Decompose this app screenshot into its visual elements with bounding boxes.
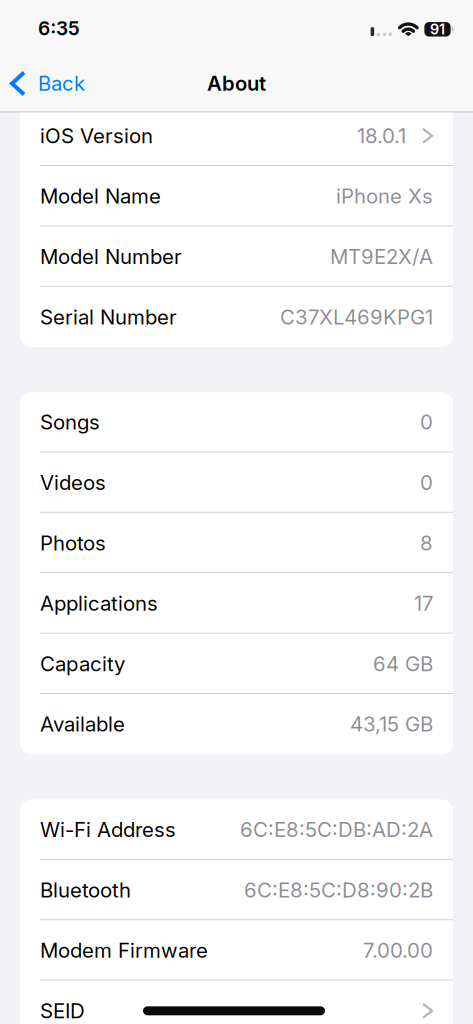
staticText: SEID bbox=[40, 998, 85, 1023]
staticText: 7.00.00 bbox=[363, 938, 433, 963]
staticText: About bbox=[207, 71, 266, 96]
staticText: Back bbox=[38, 71, 85, 96]
staticText: iPhone Xs bbox=[336, 184, 433, 209]
staticText: 17 bbox=[414, 591, 433, 616]
staticText: Applications bbox=[40, 591, 158, 616]
staticText: iOS Version bbox=[40, 123, 153, 148]
staticText: 91 bbox=[430, 21, 445, 38]
staticText: Photos bbox=[40, 531, 106, 555]
staticText: Serial Number bbox=[40, 305, 177, 329]
staticText: 8 bbox=[420, 531, 433, 555]
staticText: Model Number bbox=[40, 244, 182, 269]
staticText: MT9E2X/A bbox=[330, 244, 433, 269]
staticText: 6C:E8:5C:DB:AD:2A bbox=[240, 817, 433, 842]
staticText: C37XL469KPG1 bbox=[280, 305, 433, 329]
staticText: Capacity bbox=[40, 651, 125, 676]
staticText: 6C:E8:5C:D8:90:2B bbox=[244, 878, 433, 902]
staticText: Videos bbox=[40, 470, 106, 495]
staticText: 6:35 bbox=[38, 17, 80, 40]
staticText: 18.0.1 bbox=[357, 123, 406, 148]
staticText: Modem Firmware bbox=[40, 938, 208, 963]
staticText: 43,15 GB bbox=[350, 712, 433, 737]
staticText: 0 bbox=[420, 470, 433, 495]
button[interactable]: SEID bbox=[20, 981, 453, 1024]
staticText: 64 GB bbox=[373, 651, 433, 676]
staticText: Wi-Fi Address bbox=[40, 817, 176, 842]
button[interactable]: Back bbox=[12, 71, 85, 96]
staticText: 0 bbox=[420, 410, 433, 435]
staticText: Available bbox=[40, 712, 125, 737]
staticText: Bluetooth bbox=[40, 878, 131, 902]
staticText: Model Name bbox=[40, 184, 161, 209]
button[interactable]: iOS Version bbox=[20, 106, 453, 166]
staticText: Songs bbox=[40, 410, 100, 435]
